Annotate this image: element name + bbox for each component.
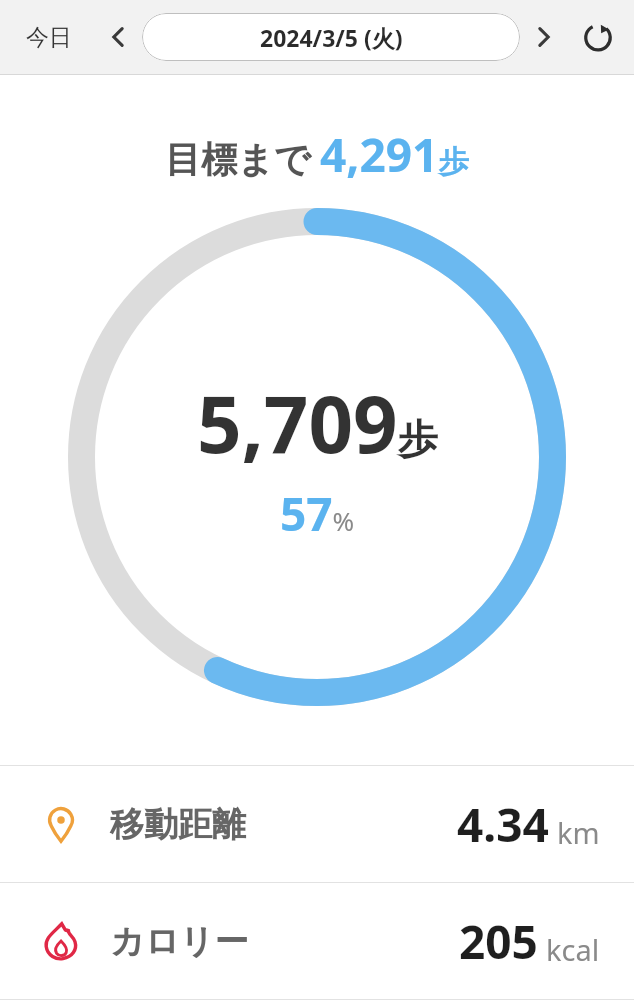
staticText: 今日 bbox=[26, 23, 72, 52]
button[interactable]: Distance bbox=[0, 766, 634, 882]
staticText: 205 bbox=[459, 910, 538, 973]
staticText: 5,709歩 bbox=[197, 370, 438, 476]
other: Distance bbox=[38, 801, 84, 847]
staticText: 4.34 bbox=[457, 793, 549, 856]
button[interactable]: 今日 bbox=[14, 17, 84, 58]
staticText: 目標まで 4,291歩 bbox=[165, 123, 469, 186]
staticText: 57% bbox=[280, 482, 355, 545]
button[interactable]: Refresh bbox=[576, 15, 620, 59]
button[interactable]: Previous day bbox=[98, 17, 138, 57]
staticText: カロリー bbox=[110, 920, 249, 963]
button[interactable]: 2024/3/5 (火) bbox=[142, 13, 520, 61]
button[interactable]: Calories bbox=[0, 883, 634, 999]
other: Calories bbox=[38, 918, 84, 964]
staticText: 移動距離 bbox=[110, 803, 246, 846]
staticText: km bbox=[557, 813, 600, 852]
button[interactable]: Next day bbox=[524, 17, 564, 57]
staticText: kcal bbox=[546, 930, 600, 969]
staticText: 2024/3/5 (火) bbox=[260, 22, 403, 53]
